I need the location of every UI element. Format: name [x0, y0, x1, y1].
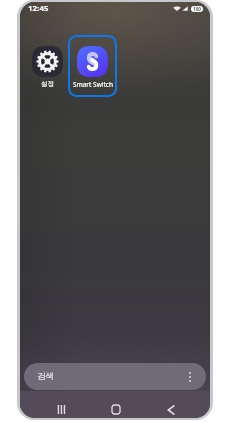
staticText: 100	[193, 6, 201, 12]
staticText: 검색	[37, 371, 54, 382]
button[interactable]: 설정	[23, 38, 72, 102]
staticText: 12:45	[28, 3, 49, 14]
button[interactable]: Smart Switch	[68, 38, 117, 102]
staticText: Smart Switch	[73, 80, 113, 89]
button[interactable]: Home	[102, 395, 130, 418]
button[interactable]: Back	[157, 395, 185, 418]
button[interactable]: Recent apps	[47, 395, 75, 418]
staticText: 설정	[41, 80, 54, 88]
button[interactable]: 검색	[24, 363, 206, 390]
